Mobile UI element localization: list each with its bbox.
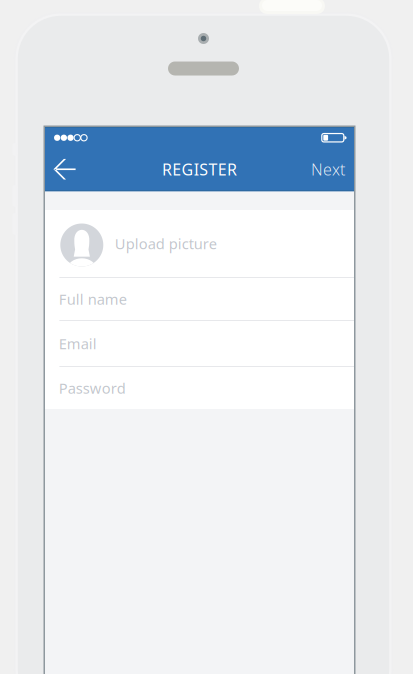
staticText: Email (59, 334, 97, 353)
button[interactable]: Back (45, 148, 89, 190)
button[interactable]: Password (45, 367, 354, 409)
button[interactable]: Full name (45, 278, 354, 320)
staticText: Upload picture (115, 234, 217, 253)
staticText: REGISTER (162, 159, 237, 180)
button[interactable]: Upload picture (45, 210, 354, 277)
staticText: Full name (59, 289, 127, 309)
button[interactable]: Email (45, 321, 354, 366)
button[interactable]: Next (311, 148, 354, 190)
staticText: Password (59, 378, 126, 398)
staticText: Next (311, 159, 345, 180)
